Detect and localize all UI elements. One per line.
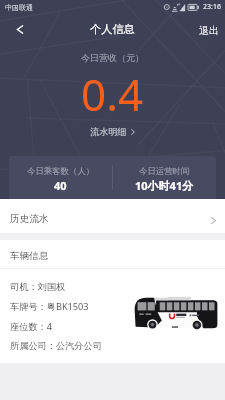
staticText: 中国联通	[5, 3, 33, 12]
staticText: 历史流水	[10, 213, 49, 225]
staticText: 今日营收（元）	[81, 52, 144, 63]
button[interactable]: 退出	[195, 16, 225, 42]
staticText: 今日乘客数（人）	[27, 166, 95, 177]
button[interactable]: 今日乘客数（人）	[9, 156, 112, 199]
button[interactable]: 流水明细	[85, 124, 140, 140]
staticText: 40	[54, 178, 67, 193]
staticText: 车牌号：粤BK1503	[10, 300, 89, 313]
staticText: 车辆信息	[10, 250, 49, 262]
staticText: 0.4	[81, 64, 144, 124]
staticText: 退出	[199, 25, 219, 37]
button[interactable]: 历史流水	[0, 199, 225, 233]
staticText: 司机：刘国权	[10, 281, 66, 293]
button[interactable]: 今日运营时间	[113, 156, 216, 199]
staticText: 座位数：4	[10, 320, 53, 333]
staticText: 个人信息	[90, 22, 135, 36]
staticText: 今日运营时间	[139, 166, 190, 177]
staticText: 所属公司：公汽分公司	[10, 340, 102, 352]
staticText: 流水明细	[90, 126, 127, 138]
staticText: 10小时41分	[135, 178, 194, 193]
staticText: 23:16	[203, 2, 221, 12]
button[interactable]: Back	[3, 14, 37, 44]
